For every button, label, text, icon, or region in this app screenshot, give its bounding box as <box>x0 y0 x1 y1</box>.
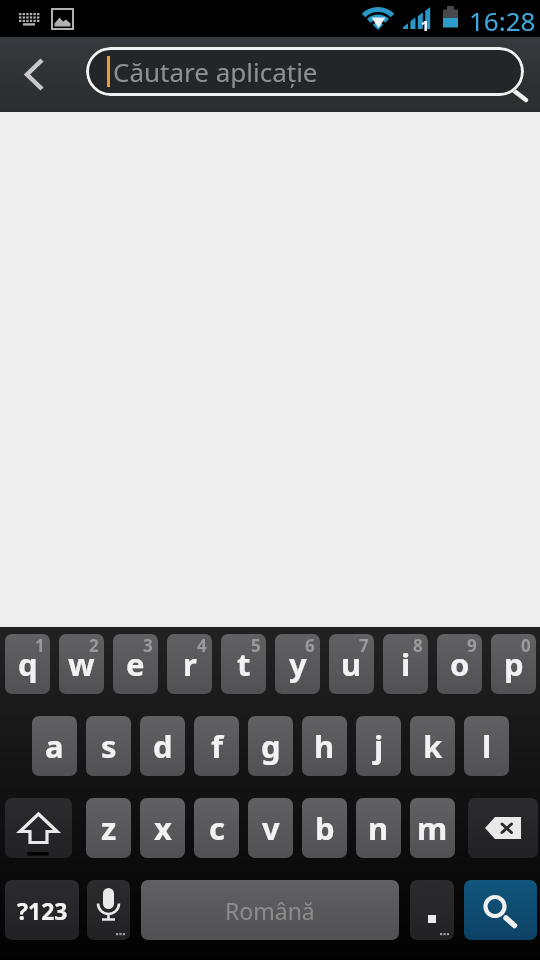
staticText: r <box>183 643 197 685</box>
staticText: o <box>450 643 470 685</box>
button[interactable]: f <box>194 716 239 776</box>
staticText: a <box>45 725 64 767</box>
staticText: 16:28 <box>469 3 536 38</box>
staticText: y <box>289 643 307 685</box>
button[interactable]: x <box>140 798 185 858</box>
staticText: m <box>417 807 448 849</box>
staticText: 0 <box>521 634 531 657</box>
button[interactable]: t <box>221 634 266 694</box>
staticText: 3 <box>143 634 153 657</box>
staticText: q <box>18 643 38 685</box>
staticText: l <box>482 725 492 767</box>
button[interactable]: k <box>410 716 455 776</box>
button[interactable]: b <box>302 798 347 858</box>
staticText: t <box>237 643 251 685</box>
staticText: i <box>401 643 411 685</box>
staticText: Română <box>225 895 315 926</box>
staticText: g <box>261 725 281 767</box>
staticText: w <box>68 643 95 685</box>
button[interactable] <box>468 798 538 858</box>
staticText: p <box>504 643 524 685</box>
staticText: Căutare aplicație <box>113 54 318 89</box>
staticText: 2 <box>89 634 99 657</box>
button[interactable]: l <box>464 716 509 776</box>
button[interactable]: ?123 <box>5 880 79 940</box>
button[interactable] <box>0 37 66 112</box>
button[interactable]: a <box>32 716 77 776</box>
staticText: 6 <box>305 634 315 657</box>
button[interactable] <box>87 880 130 940</box>
staticText: 5 <box>251 634 261 657</box>
button[interactable] <box>464 880 537 940</box>
staticText: s <box>101 725 117 767</box>
button[interactable]: o <box>437 634 482 694</box>
button[interactable]: z <box>86 798 131 858</box>
staticText: f <box>211 725 223 767</box>
staticText: z <box>101 807 117 849</box>
staticText: b <box>315 807 335 849</box>
staticText: 1 <box>35 634 45 657</box>
button[interactable]: i <box>383 634 428 694</box>
button[interactable]: n <box>356 798 401 858</box>
button[interactable] <box>5 798 72 858</box>
staticText: 8 <box>413 634 423 657</box>
button[interactable]: Română <box>141 880 399 940</box>
staticText: v <box>262 807 280 849</box>
staticText: c <box>209 807 225 849</box>
button[interactable]: r <box>167 634 212 694</box>
button[interactable]: w <box>59 634 104 694</box>
staticText: h <box>314 725 335 767</box>
staticText: 4 <box>197 634 207 657</box>
button[interactable]: Căutare aplicație <box>86 47 524 96</box>
button[interactable]: s <box>86 716 131 776</box>
staticText: u <box>341 643 362 685</box>
button[interactable]: h <box>302 716 347 776</box>
staticText: n <box>368 807 389 849</box>
button[interactable]: e <box>113 634 158 694</box>
staticText: 7 <box>359 634 369 657</box>
staticText: x <box>154 807 172 849</box>
staticText: 9 <box>467 634 477 657</box>
button[interactable]: u <box>329 634 374 694</box>
button[interactable]: m <box>410 798 455 858</box>
staticText: j <box>374 725 384 767</box>
staticText: k <box>423 725 443 767</box>
button[interactable]: d <box>140 716 185 776</box>
staticText: d <box>153 725 173 767</box>
button[interactable]: q <box>5 634 50 694</box>
button[interactable]: p <box>491 634 536 694</box>
button[interactable]: v <box>248 798 293 858</box>
button[interactable] <box>410 880 454 940</box>
button[interactable]: j <box>356 716 401 776</box>
staticText: 1 <box>421 16 430 35</box>
staticText: e <box>126 643 145 685</box>
button[interactable]: y <box>275 634 320 694</box>
button[interactable]: g <box>248 716 293 776</box>
button[interactable]: c <box>194 798 239 858</box>
staticText: ?123 <box>17 895 68 926</box>
